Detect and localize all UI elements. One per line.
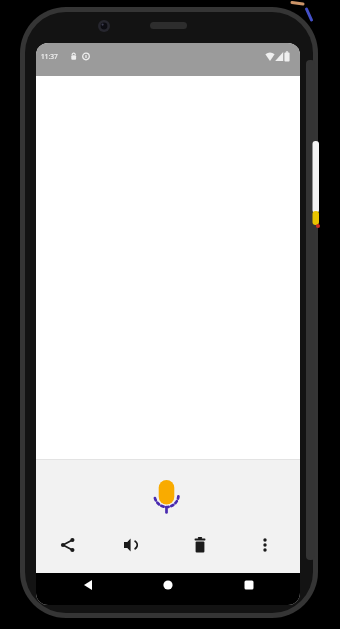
button[interactable] [50, 527, 86, 563]
button[interactable] [237, 573, 261, 597]
button[interactable] [247, 527, 283, 563]
button[interactable] [113, 527, 149, 563]
button[interactable] [156, 573, 180, 597]
button[interactable] [144, 469, 188, 515]
button[interactable] [182, 527, 218, 563]
staticText: 11:37 [41, 52, 58, 61]
button[interactable] [76, 573, 100, 597]
